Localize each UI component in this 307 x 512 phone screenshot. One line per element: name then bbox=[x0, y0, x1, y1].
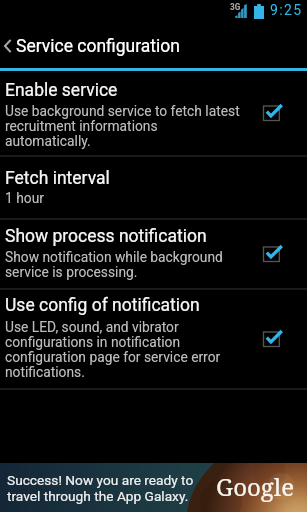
staticText: travel through the App Galaxy. bbox=[7, 488, 189, 504]
other: Navigate up bbox=[4, 39, 11, 53]
button[interactable]: Fetch interval bbox=[0, 157, 307, 218]
staticText: Enable service bbox=[5, 79, 118, 100]
staticText: 1 hour bbox=[5, 191, 44, 206]
staticText: Show notification while background servi… bbox=[5, 250, 223, 280]
button[interactable]: Use config of notification bbox=[0, 290, 307, 388]
button[interactable]: Show process notification bbox=[0, 220, 307, 288]
button[interactable]: Navigate up bbox=[0, 24, 307, 68]
staticText: 3G bbox=[230, 2, 241, 12]
button[interactable]: Enable service bbox=[0, 71, 307, 155]
staticText: Service configuration bbox=[16, 36, 180, 57]
other: Toggle setting bbox=[262, 245, 282, 263]
staticText: Google bbox=[216, 470, 295, 503]
other: Toggle setting bbox=[262, 330, 282, 348]
staticText: Use config of notification bbox=[5, 294, 200, 315]
staticText: Success! Now you are ready to bbox=[7, 472, 194, 488]
staticText: Fetch interval bbox=[5, 167, 110, 188]
other: Toggle setting bbox=[262, 104, 282, 122]
staticText: 9:25 bbox=[270, 2, 303, 18]
staticText: Show process notification bbox=[5, 225, 207, 246]
button[interactable]: Success! Now you are ready to bbox=[0, 463, 307, 512]
staticText: Use LED, sound, and vibrator configurati… bbox=[5, 320, 221, 380]
staticText: Use background service to fetch latest r… bbox=[5, 104, 240, 149]
